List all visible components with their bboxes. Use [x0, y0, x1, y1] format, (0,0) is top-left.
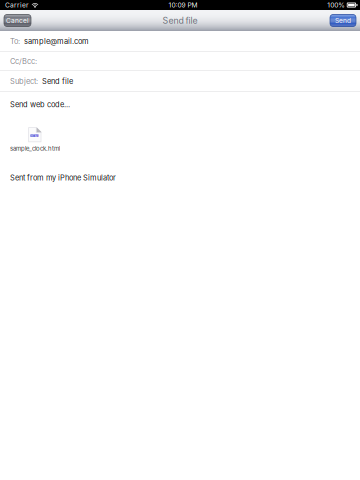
staticText: Send file — [162, 15, 197, 26]
button[interactable]: Cc/Bcc: — [0, 52, 360, 71]
staticText: Send file — [42, 77, 73, 86]
staticText: Carrier — [5, 1, 29, 9]
staticText: Send — [335, 16, 351, 24]
staticText: HTML — [31, 134, 40, 138]
staticText: Send web code... — [10, 100, 70, 109]
button[interactable]: Send — [330, 14, 356, 26]
button[interactable]: Subject: — [0, 71, 360, 92]
staticText: Cancel — [6, 16, 29, 24]
staticText: Subject: — [10, 77, 38, 86]
staticText: To: — [10, 37, 20, 46]
button[interactable]: sample_clock.html attachment — [0, 109, 60, 152]
staticText: Cc/Bcc: — [10, 57, 37, 66]
staticText: Sent from my iPhone Simulator — [10, 173, 116, 182]
button[interactable]: To: — [0, 31, 360, 52]
staticText: 100% — [327, 1, 345, 9]
staticText: sample@mail.com — [24, 37, 89, 46]
staticText: sample_clock.html — [10, 145, 60, 152]
staticText: 10:09 PM — [168, 1, 197, 9]
button[interactable]: Cancel — [4, 14, 31, 26]
